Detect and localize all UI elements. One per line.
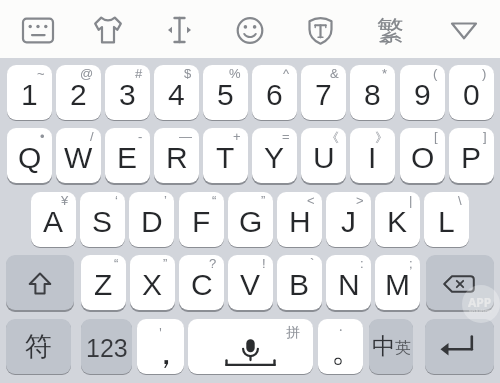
staticText: / [90, 129, 94, 144]
staticText: Y [264, 141, 285, 175]
staticText: ‘ [115, 193, 118, 208]
button[interactable]: L [424, 192, 469, 247]
button[interactable]: E [105, 128, 150, 183]
button[interactable]: 3 [105, 65, 150, 120]
button[interactable]: U [301, 128, 346, 183]
staticText: • [40, 129, 45, 144]
button[interactable]: 中 [369, 319, 413, 374]
button[interactable]: 8 [350, 65, 395, 120]
button[interactable]: K [375, 192, 420, 247]
button[interactable]: 4 [154, 65, 199, 120]
staticText: L [438, 205, 455, 239]
staticText: + [233, 129, 241, 144]
button[interactable]: 拼 [188, 319, 313, 374]
staticText: > [356, 193, 364, 208]
button[interactable]: G [228, 192, 273, 247]
staticText: “ [212, 193, 217, 208]
staticText: < [307, 193, 315, 208]
button[interactable]: Q [7, 128, 52, 183]
button[interactable] [368, 6, 416, 54]
staticText: — [179, 129, 192, 144]
staticText: ) [482, 66, 487, 81]
staticText: # [135, 66, 143, 81]
button[interactable]: H [277, 192, 322, 247]
button[interactable]: 6 [252, 65, 297, 120]
staticText: 2 [70, 78, 87, 112]
staticText: 9 [414, 78, 431, 112]
button[interactable]: 符 [6, 319, 71, 374]
staticText: | [409, 193, 413, 208]
button[interactable]: Z [81, 255, 126, 310]
button[interactable]: S [80, 192, 125, 247]
button[interactable]: 7 [301, 65, 346, 120]
button[interactable]: J [326, 192, 371, 247]
button[interactable]: 123 [81, 319, 132, 374]
button[interactable]: O [400, 128, 445, 183]
button[interactable]: V [228, 255, 273, 310]
staticText: T [216, 141, 235, 175]
staticText: 《 [326, 129, 339, 145]
button[interactable]: 。 [318, 319, 363, 374]
button[interactable]: X [130, 255, 175, 310]
button[interactable]: P [449, 128, 494, 183]
staticText: A [43, 205, 64, 239]
button[interactable]: I [350, 128, 395, 183]
button[interactable] [6, 255, 74, 310]
staticText: X [142, 268, 163, 302]
button[interactable] [297, 6, 345, 54]
staticText: ^ [283, 66, 290, 81]
button[interactable]: 1 [7, 65, 52, 120]
button[interactable] [85, 6, 133, 54]
staticText: [ [434, 129, 438, 144]
staticText: 。 [331, 328, 363, 371]
staticText: 中 [372, 332, 395, 361]
button[interactable]: 5 [203, 65, 248, 120]
staticText: ] [483, 129, 487, 144]
staticText: = [282, 129, 290, 144]
button[interactable]: B [277, 255, 322, 310]
button[interactable] [14, 6, 62, 54]
staticText: ` [310, 256, 315, 271]
button[interactable]: R [154, 128, 199, 183]
button[interactable]: A [31, 192, 76, 247]
button[interactable]: C [179, 255, 224, 310]
staticText: N [338, 268, 360, 302]
staticText: P [461, 141, 482, 175]
button[interactable]: 2 [56, 65, 101, 120]
staticText: \ [458, 193, 462, 208]
staticText: ' [159, 323, 162, 341]
button[interactable] [156, 6, 204, 54]
staticText: 4 [168, 78, 185, 112]
staticText: R [166, 141, 188, 175]
button[interactable]: F [179, 192, 224, 247]
staticText: F [192, 205, 211, 239]
button[interactable]: M [375, 255, 420, 310]
staticText: Z [94, 268, 113, 302]
staticText: - [138, 129, 143, 144]
staticText: C [191, 268, 213, 302]
staticText: ; [409, 256, 413, 271]
button[interactable]: N [326, 255, 371, 310]
button[interactable] [425, 319, 494, 374]
button[interactable]: 9 [400, 65, 445, 120]
button[interactable] [226, 6, 274, 54]
staticText: ? [209, 256, 217, 271]
staticText: 8 [364, 78, 381, 112]
staticText: 英 [395, 338, 411, 358]
button[interactable] [439, 6, 487, 54]
staticText: 1 [21, 78, 38, 112]
button[interactable]: ， [137, 319, 184, 374]
staticText: 6 [266, 78, 283, 112]
staticText: APP [468, 294, 492, 310]
button[interactable]: 0 [449, 65, 494, 120]
staticText: 繁 [377, 14, 404, 48]
button[interactable]: D [129, 192, 174, 247]
button[interactable]: Y [252, 128, 297, 183]
staticText: 符 [25, 330, 52, 364]
button[interactable]: T [203, 128, 248, 183]
button[interactable] [426, 255, 494, 310]
staticText: · [339, 321, 343, 339]
staticText: * [382, 66, 388, 81]
button[interactable]: W [56, 128, 101, 183]
staticText: M [385, 268, 410, 302]
